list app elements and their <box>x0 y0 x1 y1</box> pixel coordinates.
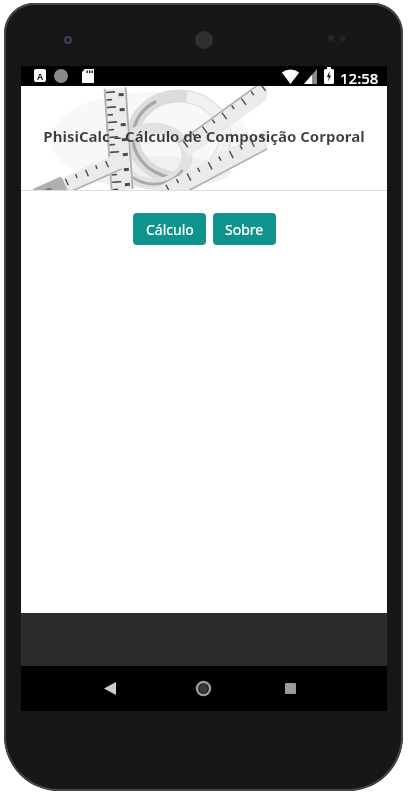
button[interactable]: Cálculo <box>133 213 206 245</box>
staticText: PhisiCalc – Cálculo de Composição Corpor… <box>43 126 365 146</box>
staticText: 12:58 <box>340 68 379 88</box>
button[interactable] <box>196 681 211 696</box>
staticText: Sobre <box>225 220 264 239</box>
staticText: A <box>37 70 44 82</box>
staticText: Cálculo <box>146 220 194 239</box>
button[interactable] <box>285 683 296 694</box>
button[interactable]: Sobre <box>213 213 276 245</box>
button[interactable] <box>104 682 116 695</box>
